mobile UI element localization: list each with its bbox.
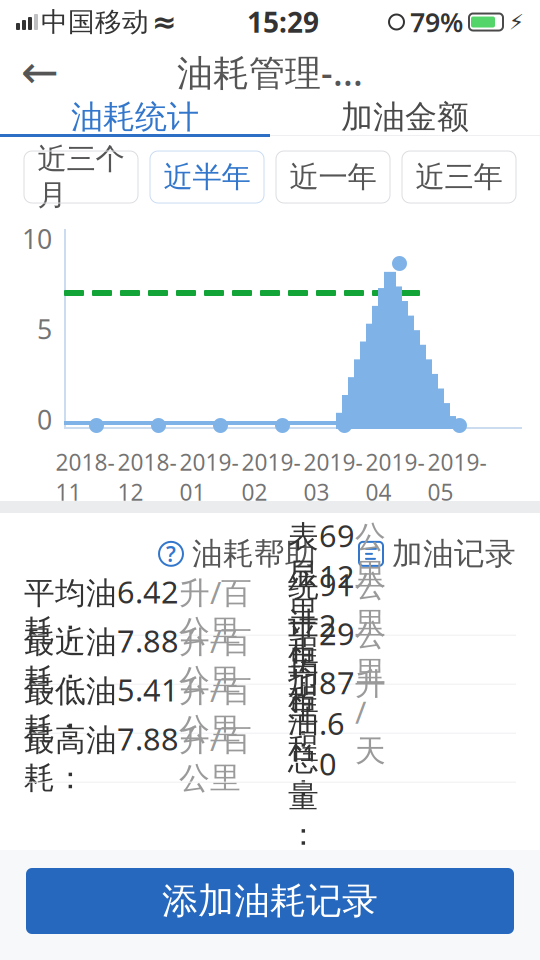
staticText: 2019-05: [427, 447, 486, 507]
staticText: 2019-01: [179, 447, 238, 507]
staticText: 2018-12: [117, 447, 176, 507]
staticText: 5.41: [117, 669, 179, 710]
button[interactable]: 近三个月: [24, 151, 138, 203]
staticText: 近一年: [289, 159, 376, 195]
staticText: 近三年: [415, 159, 502, 195]
staticText: ←: [21, 46, 59, 98]
staticText: 79%: [410, 4, 463, 40]
staticText: 平均油耗：: [24, 574, 117, 650]
staticText: 油耗统计: [71, 97, 199, 137]
staticText: 加油金额: [341, 97, 469, 137]
staticText: 7.88: [117, 620, 179, 661]
staticText: 添加油耗记录: [162, 879, 378, 923]
button[interactable]: Back: [12, 47, 68, 97]
staticText: 公里/天: [355, 616, 386, 770]
button[interactable]: 近三年: [402, 151, 516, 203]
staticText: 升/百公里: [179, 670, 252, 748]
button[interactable]: 添加油耗记录: [26, 868, 514, 934]
staticText: 10: [22, 221, 52, 256]
staticText: 公里: [355, 518, 386, 593]
staticText: 油耗帮助: [192, 535, 316, 573]
staticText: 2019-03: [303, 447, 362, 507]
button[interactable]: 近一年: [276, 151, 390, 203]
staticText: 近半年: [163, 159, 250, 195]
button[interactable]: 油耗统计: [0, 100, 270, 134]
button[interactable]: 加油记录: [358, 527, 516, 581]
staticText: 29: [319, 613, 355, 654]
staticText: 2018-11: [55, 447, 114, 507]
staticText: 平均里程：: [288, 616, 319, 804]
staticText: 中国移动: [41, 6, 149, 38]
staticText: 912: [319, 564, 355, 645]
staticText: 6.42: [117, 571, 179, 612]
staticText: ≈: [152, 5, 177, 39]
staticText: 近三个月: [37, 141, 124, 213]
staticText: 6912: [319, 515, 355, 596]
staticText: 87.60: [319, 662, 355, 784]
staticText: 2019-04: [365, 447, 424, 507]
staticText: 最近油耗：: [24, 623, 117, 699]
staticText: 公里: [355, 567, 386, 642]
staticText: 5: [37, 311, 52, 347]
staticText: 加油记录: [392, 535, 516, 573]
staticText: 统计里程：: [288, 567, 319, 755]
staticText: 2019-02: [241, 447, 300, 507]
staticText: 最低油耗：: [24, 672, 117, 748]
staticText: 表显里程：: [288, 518, 319, 706]
staticText: 升: [355, 665, 386, 703]
staticText: 升/百公里: [179, 572, 252, 650]
staticText: 7.88: [117, 718, 179, 759]
staticText: 最高油耗：: [24, 721, 117, 797]
staticText: ⚡︎: [509, 10, 524, 34]
button[interactable]: ?: [158, 527, 316, 581]
staticText: 15:29: [247, 3, 319, 41]
staticText: 升/百公里: [179, 719, 252, 797]
button[interactable]: 加油金额: [270, 100, 540, 134]
staticText: 升/百公里: [179, 621, 252, 699]
button[interactable]: 近半年: [150, 151, 264, 203]
staticText: 加油总量：: [288, 665, 319, 853]
staticText: 0: [37, 402, 52, 437]
staticText: 油耗管理-...: [177, 48, 363, 96]
staticText: ?: [166, 540, 176, 568]
